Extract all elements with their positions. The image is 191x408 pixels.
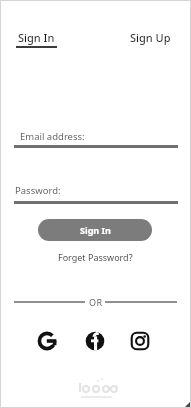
- button[interactable]: Sign In: [38, 219, 152, 241]
- button[interactable]: Sign Up: [130, 30, 171, 45]
- button[interactable]: [37, 331, 57, 351]
- button[interactable]: [85, 331, 105, 351]
- button[interactable]: Sign In: [14, 28, 55, 43]
- staticText: Sign In: [18, 30, 55, 45]
- button[interactable]: Forget Password?: [58, 251, 133, 263]
- staticText: Email address:: [20, 130, 85, 143]
- staticText: OR: [89, 296, 103, 308]
- staticText: Password:: [15, 184, 61, 197]
- button[interactable]: [130, 331, 150, 351]
- staticText: Sign In: [80, 224, 111, 236]
